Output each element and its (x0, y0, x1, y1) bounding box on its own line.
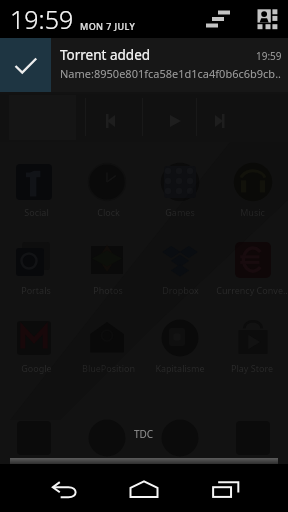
button[interactable]: Back (40, 464, 88, 512)
staticText: Social (24, 206, 49, 218)
staticText: Play Store (231, 362, 273, 374)
button[interactable]: Recent apps (202, 464, 250, 512)
staticText: TDC (134, 427, 154, 441)
staticText: Dropbox (162, 284, 199, 296)
staticText: Games (165, 206, 195, 218)
staticText: Portals (21, 284, 51, 296)
staticText: Google (21, 362, 52, 374)
staticText: 19:59 (10, 2, 74, 36)
button[interactable]: Home (120, 464, 168, 512)
staticText: Name:8950e801fca58e1d1ca4f0b6c6b9cb.. (60, 66, 282, 81)
staticText: Music (240, 206, 265, 218)
staticText: 19:59 (256, 49, 282, 63)
staticText: Kapitalisme (155, 362, 205, 374)
staticText: Currency Conve.. (216, 284, 288, 296)
staticText: Clock (97, 206, 120, 218)
button[interactable]: Torrent added (0, 38, 288, 92)
staticText: MON 7 JULY (80, 20, 136, 32)
staticText: Torrent added (60, 46, 256, 64)
staticText: BluePosition (82, 362, 135, 374)
staticText: Photos (93, 284, 123, 296)
